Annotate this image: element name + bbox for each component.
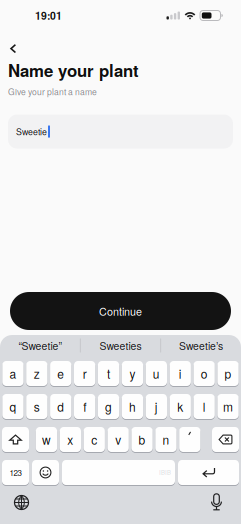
staticText: IBIB [159, 468, 171, 477]
staticText: k [177, 398, 183, 415]
button[interactable] [14, 495, 29, 510]
button[interactable]: c [84, 427, 105, 452]
button[interactable] [212, 427, 239, 452]
button[interactable]: d [50, 394, 71, 419]
staticText: j [155, 398, 158, 415]
button[interactable]: o [193, 361, 215, 386]
staticText: f [83, 398, 86, 415]
button[interactable] [32, 460, 59, 485]
button[interactable] [6, 41, 20, 56]
button[interactable]: y [122, 361, 143, 386]
button[interactable]: r [74, 361, 95, 386]
staticText: t [107, 365, 110, 382]
staticText: v [115, 431, 121, 448]
staticText: d [57, 398, 64, 415]
button[interactable]: g [98, 394, 119, 419]
button[interactable]: IBIB [62, 460, 175, 485]
staticText: n [162, 431, 169, 448]
button[interactable]: t [98, 361, 119, 386]
staticText: Continue [99, 303, 142, 319]
staticText: q [9, 398, 16, 415]
button[interactable]: h [122, 394, 143, 419]
staticText: r [83, 365, 87, 382]
staticText: l [203, 398, 206, 415]
button[interactable]: n [155, 427, 177, 452]
staticText: e [57, 365, 64, 382]
staticText: Name your plant [8, 58, 139, 82]
staticText: a [9, 365, 16, 382]
button[interactable] [178, 460, 239, 485]
button[interactable]: m [217, 394, 239, 419]
staticText: p [225, 365, 232, 382]
staticText: x [67, 431, 73, 448]
button[interactable]: 123 [2, 460, 29, 485]
staticText: i [179, 365, 182, 382]
staticText: o [201, 365, 208, 382]
button[interactable]: “Sweetie” [0, 335, 80, 356]
staticText: m [223, 398, 233, 415]
button[interactable]: Sweeties [81, 335, 160, 356]
staticText: g [105, 398, 112, 415]
staticText: 123 [9, 467, 21, 478]
staticText: b [139, 431, 146, 448]
button[interactable]: i [170, 361, 191, 386]
button[interactable]: b [131, 427, 153, 452]
button[interactable]: l [193, 394, 215, 419]
staticText: “Sweetie” [18, 338, 61, 353]
staticText: 19:01 [35, 8, 62, 23]
button[interactable]: v [107, 427, 129, 452]
staticText: y [129, 365, 135, 382]
button[interactable]: f [74, 394, 95, 419]
button[interactable]: e [50, 361, 71, 386]
button[interactable]: Continue [10, 292, 231, 330]
button[interactable]: a [2, 361, 24, 386]
staticText: z [34, 365, 40, 382]
button[interactable]: j [146, 394, 167, 419]
button[interactable]: z [26, 361, 47, 386]
button[interactable]: q [2, 394, 24, 419]
staticText: Sweeties [99, 338, 141, 353]
button[interactable] [2, 427, 29, 452]
staticText: s [34, 398, 40, 415]
staticText: Sweetie’s [179, 338, 223, 353]
button[interactable]: x [60, 427, 81, 452]
button[interactable]: w [36, 427, 57, 452]
button[interactable]: k [170, 394, 191, 419]
button[interactable] [179, 427, 200, 452]
button[interactable]: Sweetie [8, 115, 233, 149]
staticText: w [42, 431, 51, 448]
button[interactable]: Sweetie’s [161, 335, 241, 356]
staticText: Sweetie [16, 125, 47, 138]
button[interactable] [210, 494, 223, 511]
staticText: h [129, 398, 136, 415]
staticText: Give your plant a name [8, 85, 97, 98]
button[interactable]: p [217, 361, 239, 386]
staticText: c [91, 431, 97, 448]
button[interactable]: u [146, 361, 167, 386]
button[interactable]: s [26, 394, 47, 419]
staticText: u [153, 365, 160, 382]
